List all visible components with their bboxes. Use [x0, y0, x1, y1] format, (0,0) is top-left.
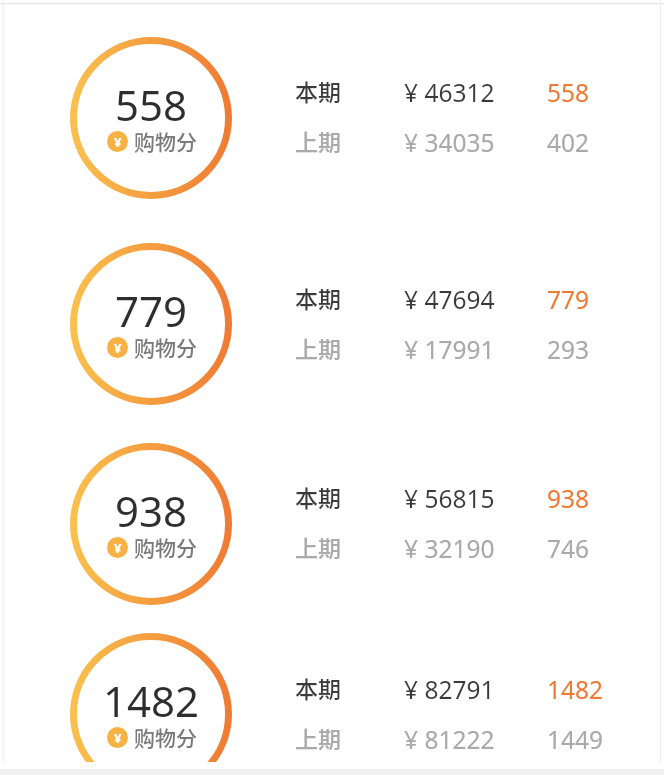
staticText: ¥ [114, 539, 122, 557]
staticText: 779 [115, 282, 188, 339]
staticText: 779 [547, 283, 590, 316]
staticText: ¥ [114, 729, 122, 747]
staticText: ¥ 56815 [404, 482, 495, 515]
staticText: ¥ 17991 [404, 333, 495, 366]
staticText: 本期 [295, 480, 341, 513]
staticText: 558 [547, 76, 590, 109]
staticText: 本期 [295, 281, 341, 314]
staticText: ¥ 82791 [404, 673, 495, 706]
staticText: 上期 [295, 530, 341, 563]
staticText: 购物分 [134, 332, 197, 362]
staticText: 购物分 [134, 126, 197, 156]
staticText: ¥ 32190 [404, 532, 495, 565]
staticText: 购物分 [134, 532, 197, 562]
staticText: 购物分 [134, 722, 197, 752]
staticText: ¥ 47694 [404, 283, 495, 316]
staticText: 938 [547, 482, 590, 515]
staticText: 293 [547, 333, 590, 366]
staticText: 402 [547, 126, 590, 159]
staticText: 746 [547, 532, 590, 565]
staticText: 本期 [295, 74, 341, 107]
staticText: 1482 [547, 673, 604, 706]
staticText: ¥ [114, 339, 122, 357]
staticText: ¥ 46312 [404, 76, 495, 109]
staticText: ¥ [114, 133, 122, 151]
button[interactable]: 779 [0, 243, 664, 405]
staticText: ¥ 81222 [404, 723, 495, 756]
staticText: 上期 [295, 124, 341, 157]
staticText: 本期 [295, 671, 341, 704]
button[interactable]: 938 [0, 443, 664, 605]
staticText: ¥ 34035 [404, 126, 495, 159]
staticText: 558 [115, 76, 188, 133]
staticText: 938 [115, 482, 188, 539]
staticText: 1449 [547, 723, 604, 756]
staticText: 上期 [295, 331, 341, 364]
staticText: 1482 [103, 672, 200, 729]
button[interactable]: 1482 [0, 633, 664, 775]
staticText: 上期 [295, 721, 341, 754]
button[interactable]: 558 [0, 37, 664, 199]
